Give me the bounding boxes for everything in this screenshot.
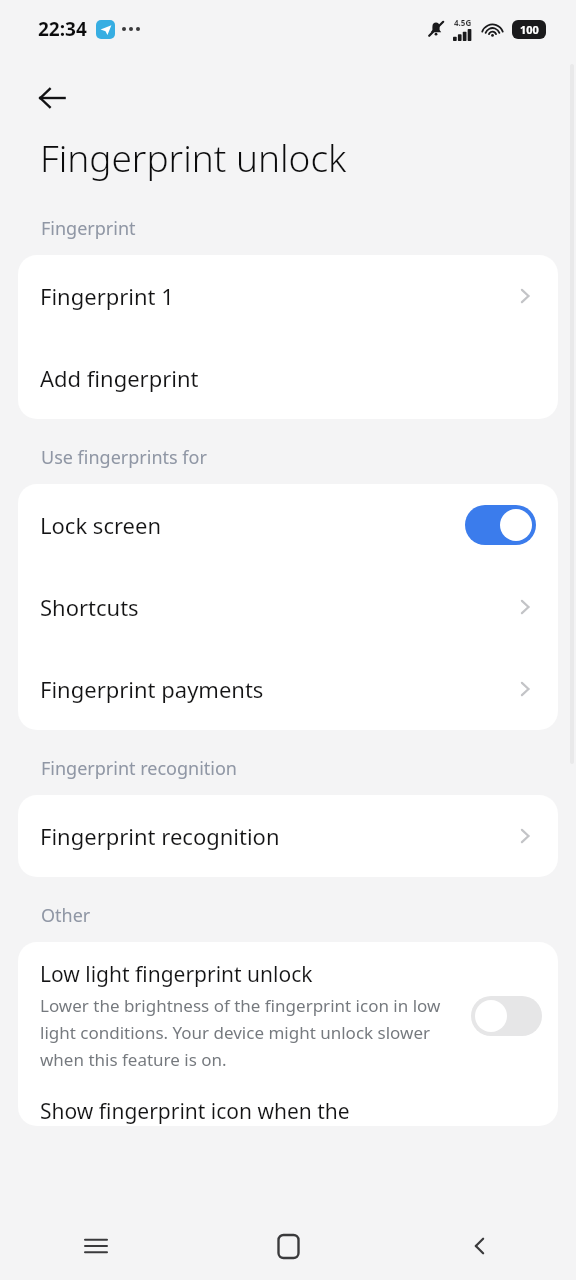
button[interactable]: Toggle [465, 505, 536, 545]
staticText: Shortcuts [40, 592, 514, 622]
staticText: Add fingerprint [40, 363, 536, 393]
staticText: Lower the brightness of the fingerprint … [40, 994, 459, 1071]
button[interactable]: Back [28, 74, 76, 122]
staticText: Fingerprint recognition [40, 821, 514, 851]
staticText: 100 [520, 22, 539, 37]
staticText: Use fingerprints for [41, 445, 207, 470]
button[interactable]: Recent apps [0, 1212, 192, 1280]
staticText: 22:34 [38, 16, 87, 42]
button[interactable]: Fingerprint recognition [18, 795, 558, 877]
staticText: Lock screen [40, 510, 465, 540]
button[interactable]: Back [384, 1212, 576, 1280]
staticText: Fingerprint [41, 216, 136, 241]
staticText: Fingerprint recognition [41, 756, 237, 781]
staticText: Fingerprint 1 [40, 281, 514, 311]
button[interactable]: Lock screen [18, 484, 558, 566]
button[interactable]: Shortcuts [18, 566, 558, 648]
staticText: Show fingerprint icon when the [40, 1097, 350, 1126]
staticText: Fingerprint unlock [40, 132, 347, 182]
button[interactable]: Toggle [471, 996, 542, 1036]
staticText: Other [41, 903, 91, 928]
staticText: Low light fingerprint unlock [40, 960, 313, 989]
staticText: 4.5G [454, 17, 472, 28]
button[interactable]: Fingerprint 1 [18, 255, 558, 337]
button[interactable]: Add fingerprint [18, 337, 558, 419]
button[interactable]: Home [192, 1212, 384, 1280]
button[interactable]: Low light fingerprint unlock [18, 942, 558, 1085]
button[interactable]: Fingerprint payments [18, 648, 558, 730]
staticText: Fingerprint payments [40, 674, 514, 704]
